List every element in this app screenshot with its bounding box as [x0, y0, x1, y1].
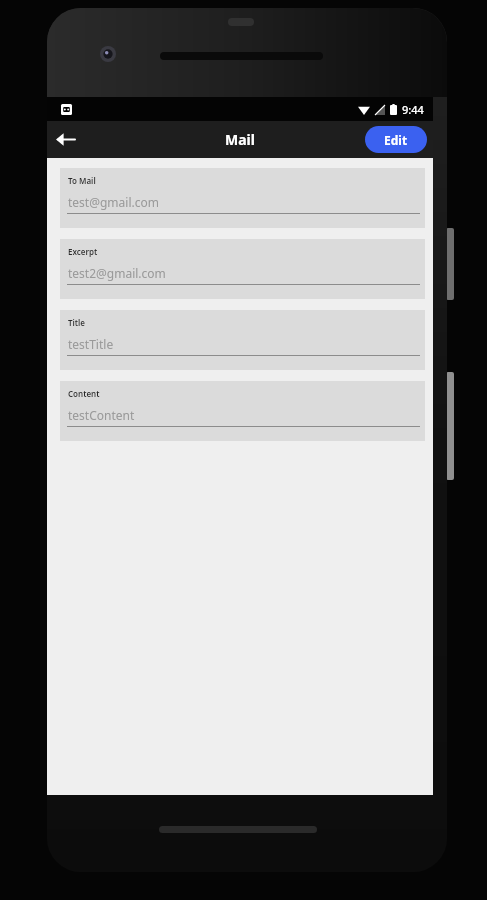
staticText: Edit — [384, 132, 408, 148]
staticText: test2@gmail.com — [68, 265, 166, 281]
button[interactable]: Content — [60, 381, 425, 441]
staticText: test@gmail.com — [68, 194, 159, 210]
button[interactable]: Title — [60, 310, 425, 370]
staticText: 9:44 — [402, 102, 424, 117]
staticText: To Mail — [68, 175, 96, 186]
staticText: Excerpt — [68, 246, 98, 257]
staticText: Mail — [225, 130, 255, 149]
button[interactable]: Edit — [365, 126, 427, 153]
button[interactable]: To Mail — [60, 168, 425, 228]
button[interactable]: Back — [47, 121, 84, 158]
button[interactable]: Excerpt — [60, 239, 425, 299]
staticText: testTitle — [68, 336, 114, 352]
staticText: testContent — [68, 407, 135, 423]
staticText: Title — [68, 317, 86, 328]
staticText: Content — [68, 388, 100, 399]
